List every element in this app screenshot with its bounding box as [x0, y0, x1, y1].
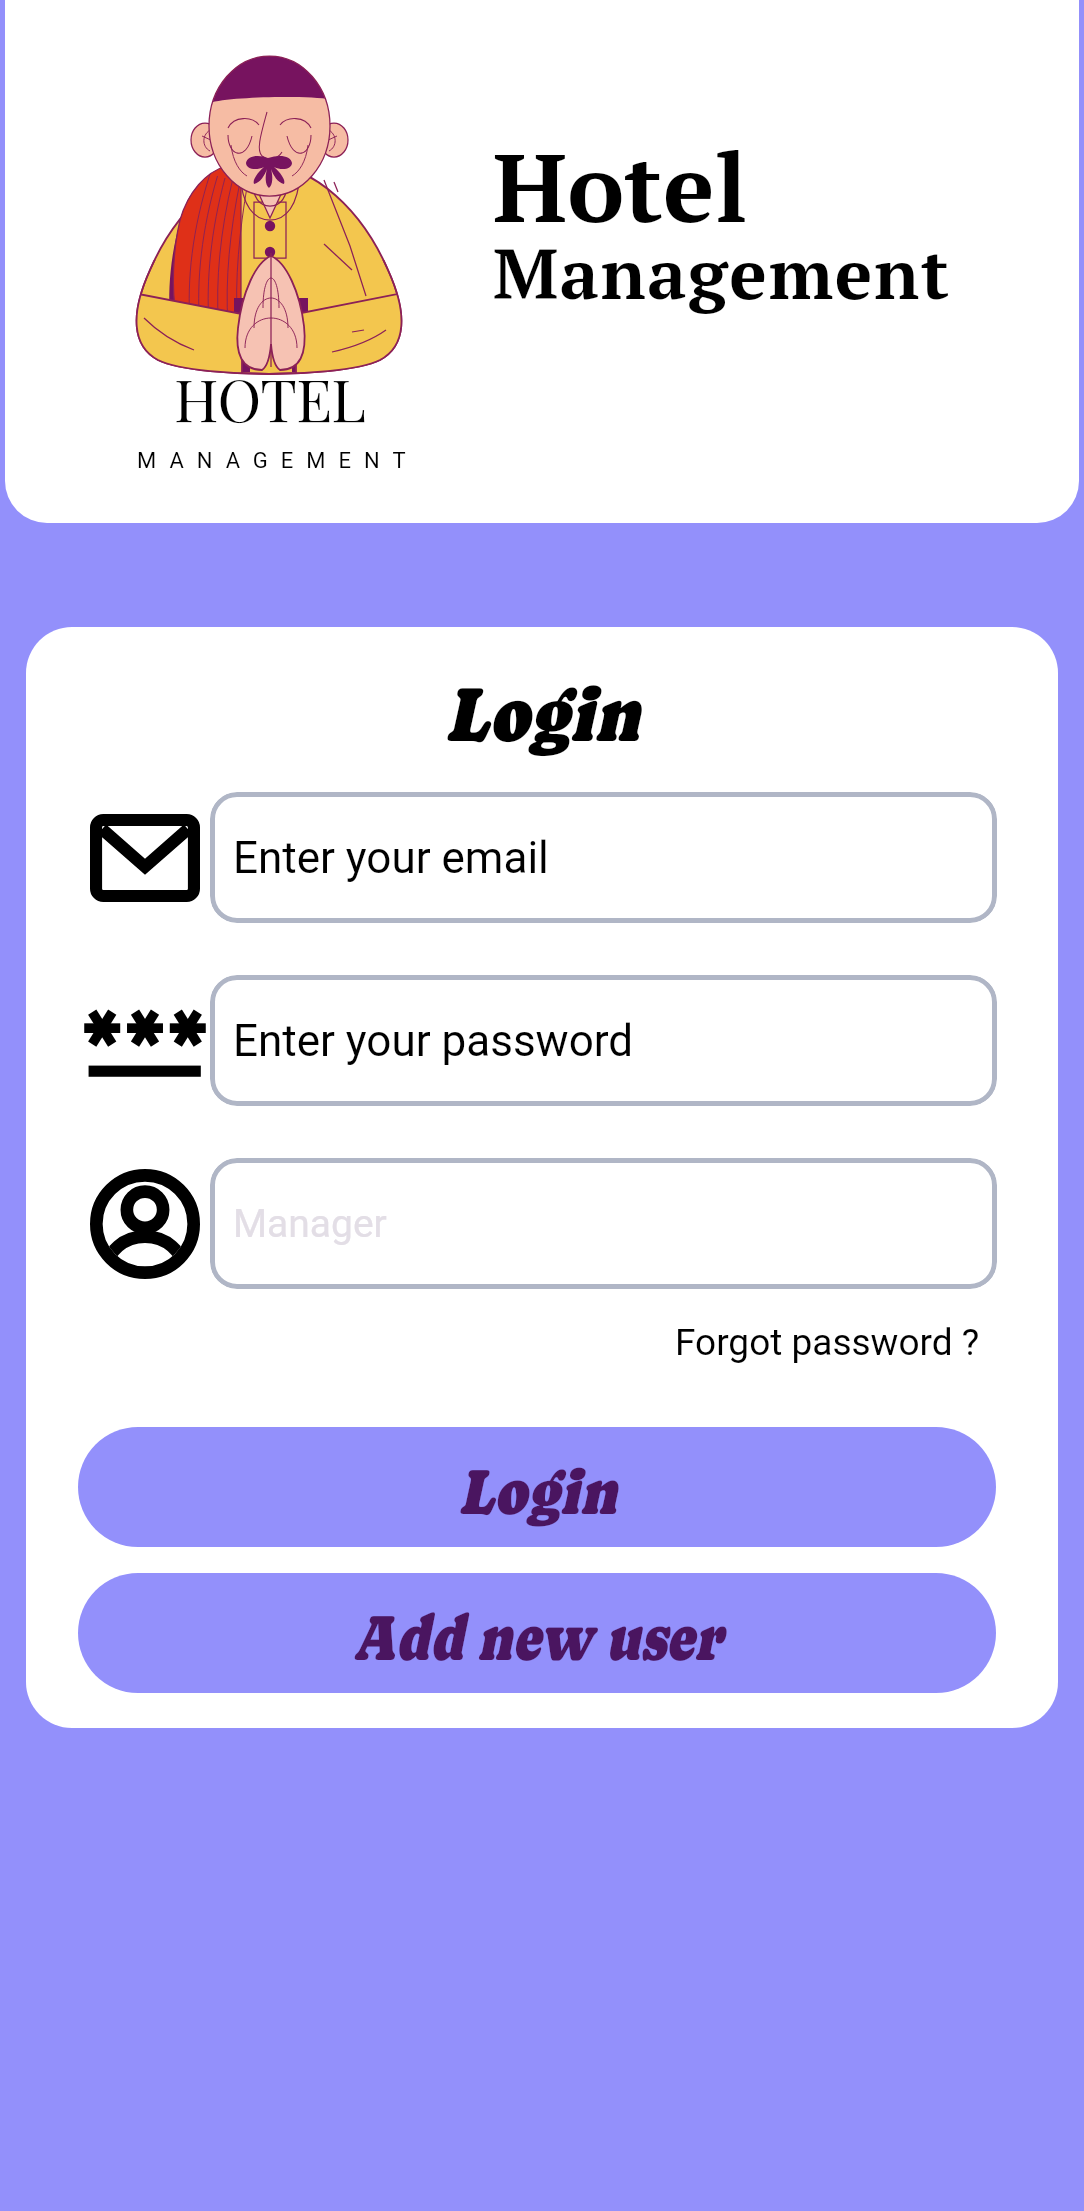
staticText: Login	[88, 669, 996, 758]
staticText: MANAGEMENT	[137, 448, 417, 474]
staticText: Enter your email	[233, 832, 549, 884]
staticText: Manager	[233, 1201, 387, 1247]
staticText: Hotel	[493, 122, 748, 249]
button[interactable]: Login	[78, 1427, 996, 1547]
button[interactable]: Manager	[210, 1158, 997, 1289]
button[interactable]: Enter your password	[210, 975, 997, 1106]
button[interactable]: Enter your email	[210, 792, 997, 923]
other: User role	[90, 1169, 200, 1279]
staticText: Login	[458, 1454, 617, 1529]
other: Email	[90, 814, 200, 902]
staticText: Management	[493, 226, 951, 319]
button[interactable]: Forgot password ?	[675, 1321, 980, 1364]
button[interactable]: Add new user	[78, 1573, 996, 1693]
staticText: HOTEL	[174, 358, 366, 437]
staticText: Forgot password ?	[675, 1321, 980, 1364]
staticText: Enter your password	[233, 1015, 634, 1067]
staticText: Add new user	[352, 1600, 723, 1675]
other: Password	[83, 1008, 207, 1080]
